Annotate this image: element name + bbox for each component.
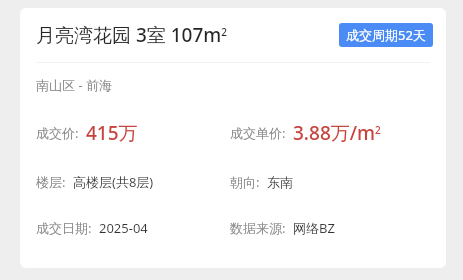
staticText: 成交价: — [36, 124, 79, 142]
button[interactable]: 成交周期52天 — [339, 23, 433, 47]
staticText: 成交周期52天 — [346, 26, 426, 44]
staticText: 415万 — [86, 120, 138, 146]
staticText: 南山区 - 前海 — [36, 76, 112, 94]
staticText: 2025-04 — [99, 219, 148, 237]
staticText: 数据来源: — [230, 219, 286, 237]
staticText: 月亮湾花园 3室 107m2 — [36, 22, 228, 48]
staticText: 朝向: — [230, 173, 260, 191]
staticText: 3.88万/m2 — [293, 120, 381, 146]
button[interactable]: 月亮湾花园 3室 107m2 — [20, 8, 446, 268]
staticText: 网络BZ — [293, 219, 335, 237]
staticText: 高楼层(共8层) — [73, 173, 154, 191]
staticText: 楼层: — [36, 173, 66, 191]
staticText: 成交单价: — [230, 124, 286, 142]
staticText: 成交日期: — [36, 219, 92, 237]
staticText: 东南 — [267, 174, 293, 190]
